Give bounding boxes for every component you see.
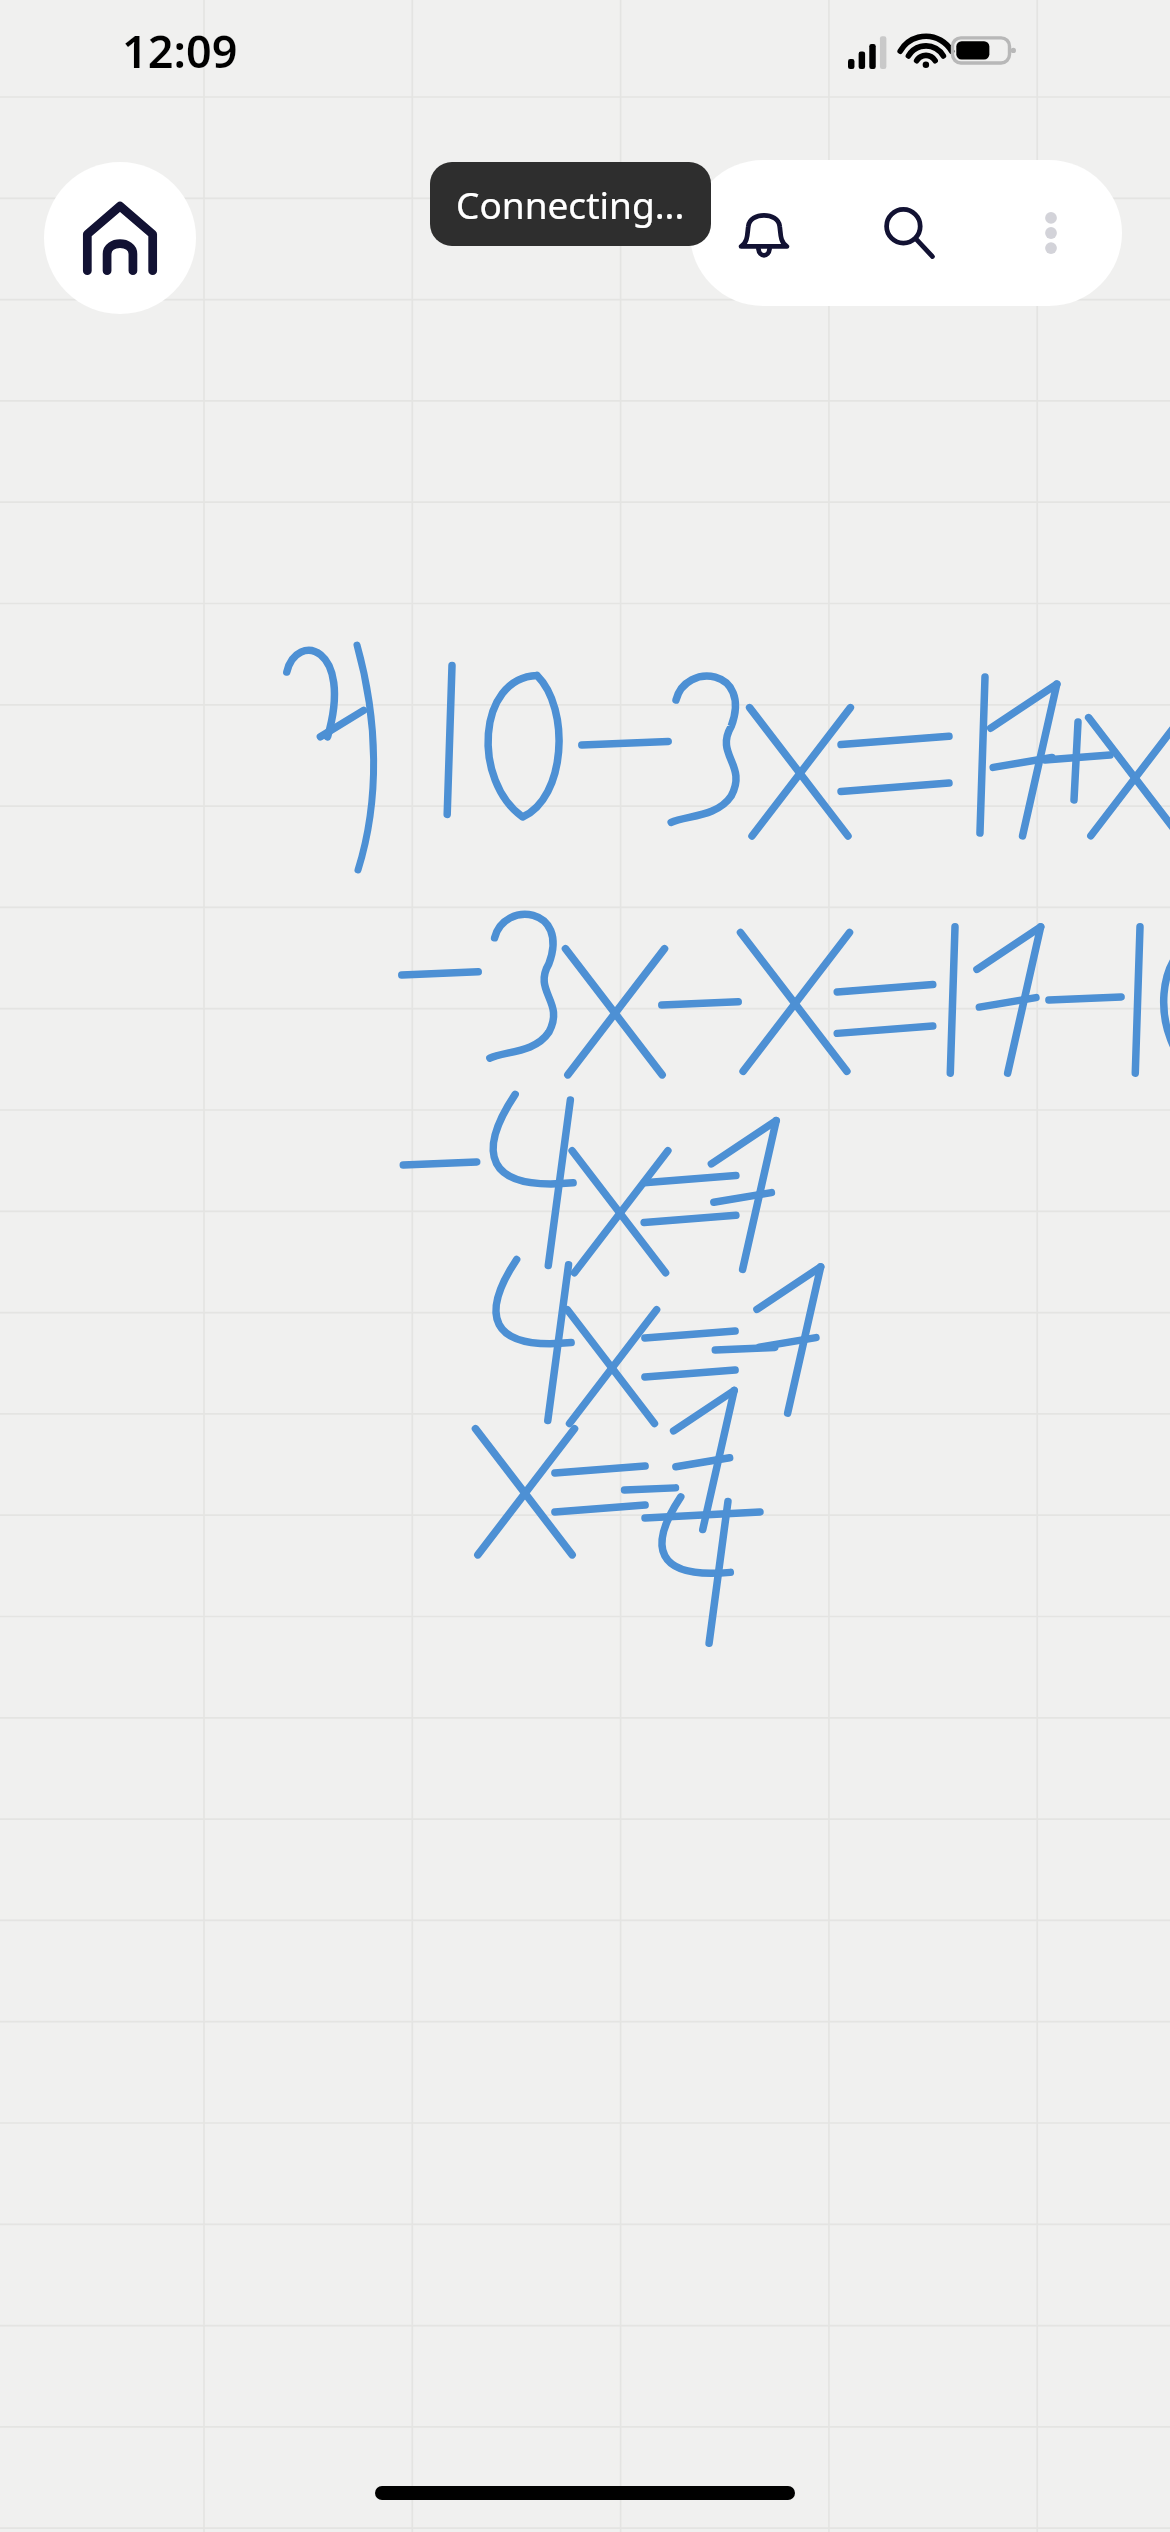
staticText: 12:09 (122, 20, 238, 81)
button[interactable]: Notifications (690, 160, 838, 306)
button[interactable]: Home (44, 162, 196, 314)
staticText: Connecting... (456, 179, 685, 229)
button[interactable]: More options (980, 160, 1122, 306)
button[interactable]: Search (838, 160, 980, 306)
